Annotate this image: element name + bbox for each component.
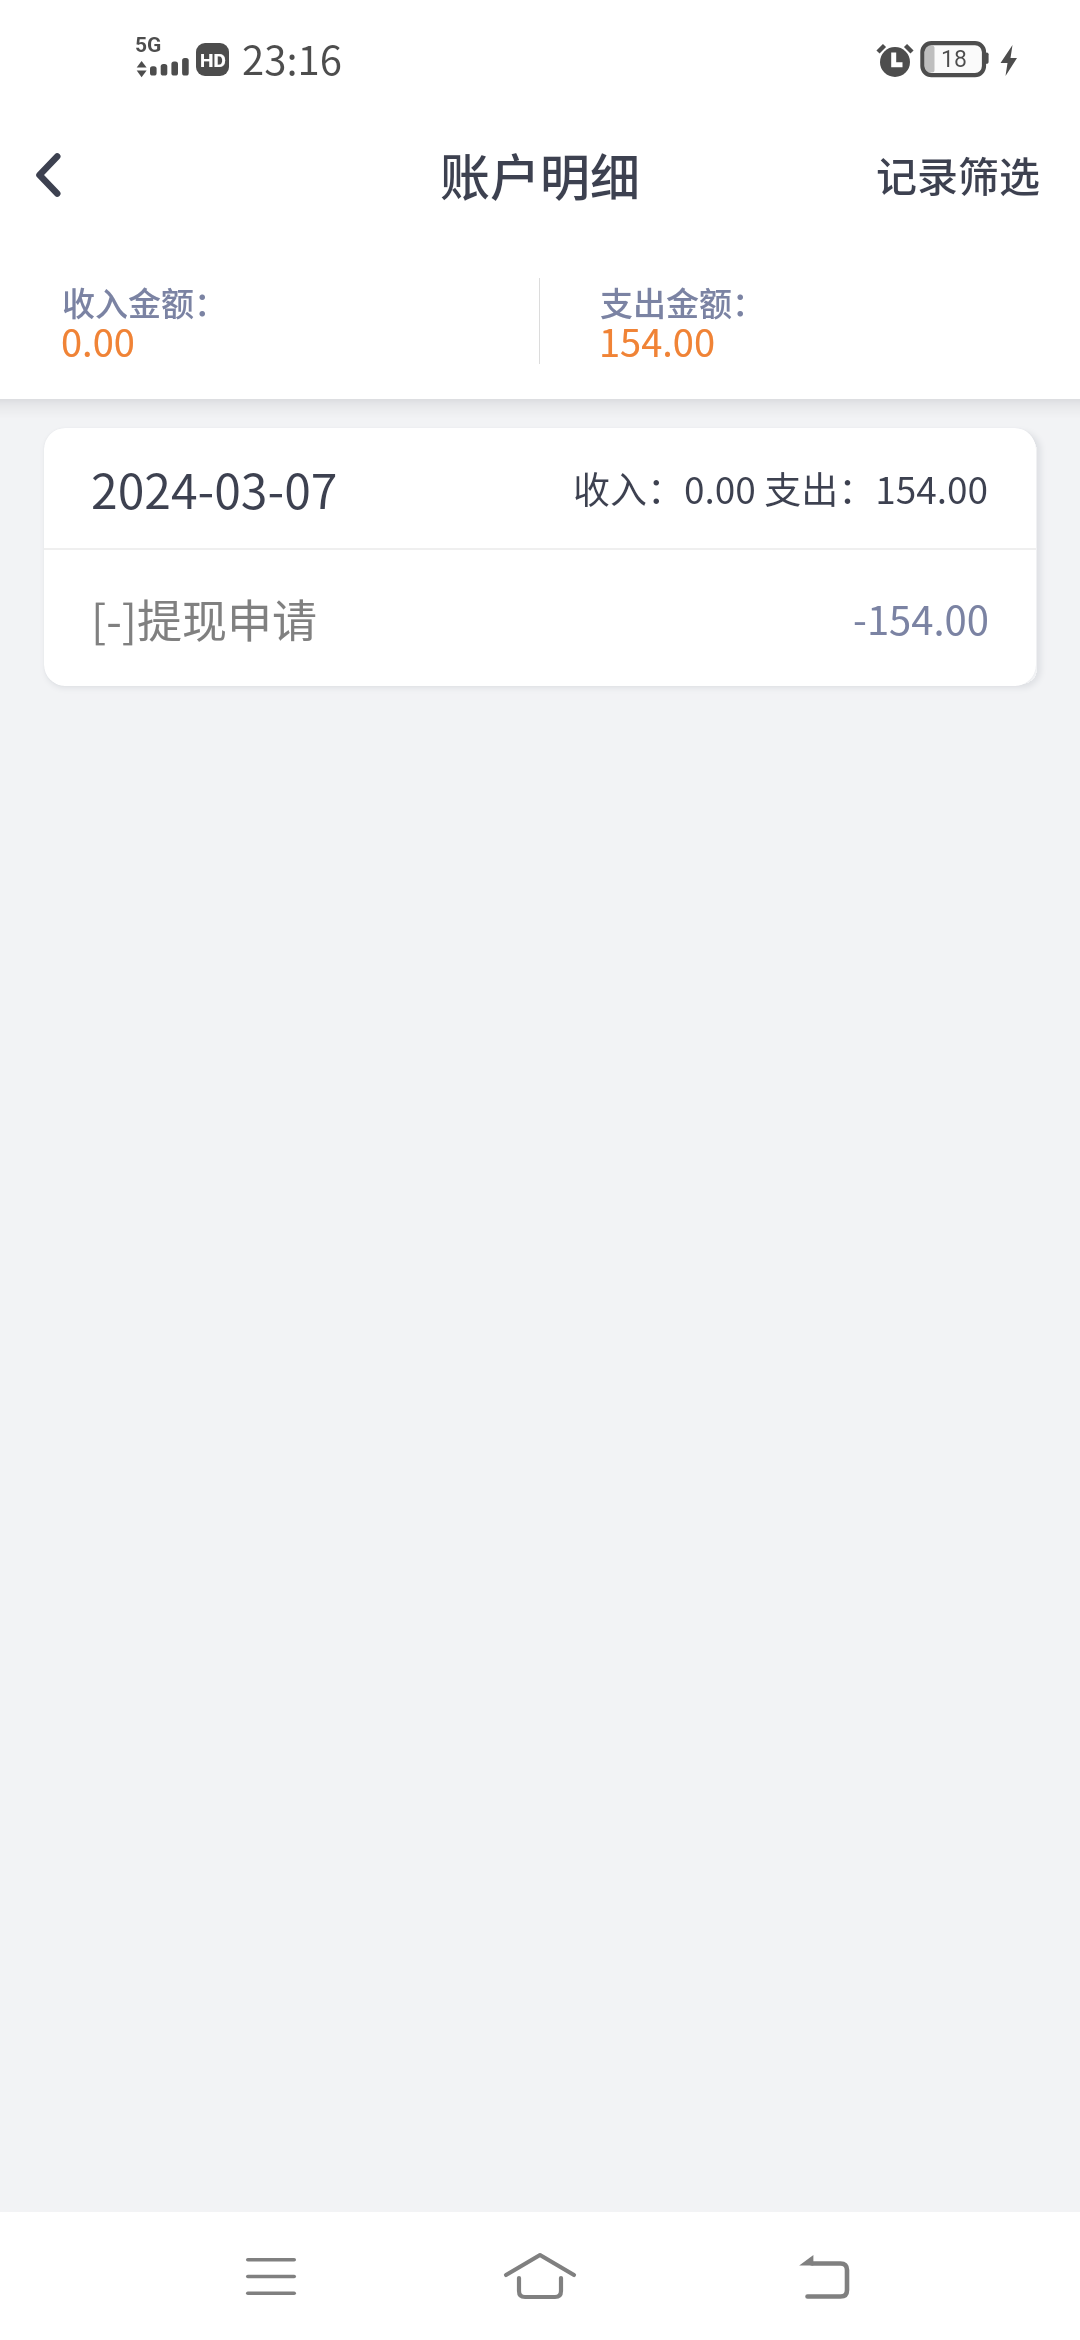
staticText: [-]提现申请 bbox=[91, 586, 318, 651]
staticText: 支出金额： bbox=[600, 278, 765, 326]
button[interactable]: [-]提现申请 bbox=[44, 550, 1036, 686]
staticText: 23:16 bbox=[242, 29, 342, 87]
staticText: 记录筛选 bbox=[876, 144, 1040, 203]
staticText: 18 bbox=[941, 46, 967, 73]
staticText: -154.00 bbox=[853, 589, 989, 647]
button[interactable]: Home bbox=[480, 2212, 600, 2340]
staticText: 2024-03-07 bbox=[91, 453, 338, 523]
staticText: 收入：0.00 支出：154.00 bbox=[573, 461, 989, 515]
button[interactable]: 记录筛选 bbox=[836, 120, 1080, 227]
staticText: 收入金额： bbox=[62, 278, 227, 326]
button[interactable]: Back bbox=[764, 2212, 884, 2340]
button[interactable]: Recent apps bbox=[211, 2212, 331, 2340]
staticText: HD bbox=[200, 49, 226, 71]
staticText: 154.00 bbox=[599, 313, 716, 368]
button[interactable]: Back bbox=[18, 143, 82, 207]
staticText: 账户明细 bbox=[440, 138, 640, 210]
staticText: 0.00 bbox=[61, 313, 135, 368]
staticText: 5G bbox=[135, 33, 162, 58]
